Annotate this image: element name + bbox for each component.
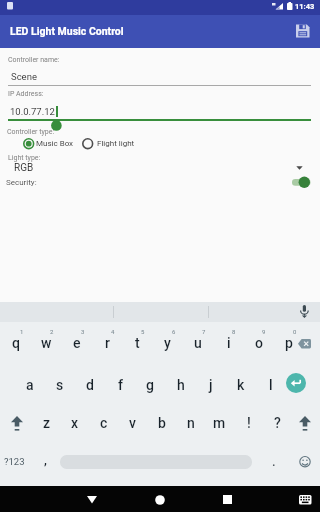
button[interactable]: [299, 456, 311, 468]
staticText: 8: [232, 328, 236, 335]
staticText: x: [71, 415, 79, 431]
button[interactable]: [90, 404, 119, 444]
button[interactable]: [263, 404, 292, 444]
staticText: k: [237, 377, 245, 393]
staticText: !: [247, 415, 251, 431]
staticText: ?: [274, 415, 281, 431]
staticText: 7: [202, 328, 206, 335]
button[interactable]: [92, 324, 122, 364]
staticText: w: [41, 335, 52, 351]
staticText: 2: [50, 328, 54, 335]
staticText: d: [86, 377, 94, 393]
staticText: z: [43, 415, 51, 431]
button[interactable]: [256, 364, 286, 404]
staticText: q: [12, 335, 20, 351]
staticText: e: [73, 335, 81, 351]
staticText: r: [105, 335, 110, 351]
button[interactable]: [146, 488, 174, 510]
staticText: .: [272, 454, 276, 469]
staticText: Controller type:: [7, 128, 55, 136]
staticText: g: [146, 377, 154, 393]
staticText: 4: [111, 328, 115, 335]
button[interactable]: [75, 364, 105, 404]
staticText: s: [56, 377, 64, 393]
staticText: Scene: [11, 71, 37, 82]
staticText: 11:43: [295, 2, 315, 11]
button[interactable]: [165, 364, 195, 404]
button[interactable]: [183, 324, 213, 364]
staticText: ?123: [4, 456, 25, 467]
button[interactable]: [21, 137, 78, 151]
button[interactable]: [61, 404, 90, 444]
button[interactable]: [290, 175, 312, 189]
staticText: t: [135, 335, 140, 351]
staticText: b: [158, 415, 166, 431]
button[interactable]: [15, 364, 45, 404]
staticText: m: [213, 415, 226, 431]
button[interactable]: [262, 444, 286, 486]
button[interactable]: [195, 364, 225, 404]
button[interactable]: [34, 444, 58, 486]
staticText: 0: [293, 328, 297, 335]
staticText: o: [255, 335, 263, 351]
button[interactable]: [5, 404, 29, 442]
staticText: a: [26, 377, 34, 393]
button[interactable]: [135, 364, 165, 404]
button[interactable]: RGB: [8, 160, 308, 176]
staticText: v: [129, 415, 136, 431]
button[interactable]: [119, 404, 148, 444]
staticText: 6: [172, 328, 176, 335]
button[interactable]: [78, 488, 106, 510]
button[interactable]: [32, 404, 61, 444]
staticText: i: [227, 335, 231, 351]
button[interactable]: [1, 324, 31, 364]
button[interactable]: [122, 324, 152, 364]
button[interactable]: [105, 364, 135, 404]
button[interactable]: [274, 324, 304, 364]
staticText: p: [285, 335, 293, 351]
staticText: Light type:: [8, 154, 41, 162]
staticText: u: [194, 335, 202, 351]
button[interactable]: [293, 404, 317, 442]
staticText: 5: [141, 328, 145, 335]
button[interactable]: [82, 137, 138, 151]
staticText: LED Light Music Control: [10, 25, 124, 37]
button[interactable]: [292, 21, 314, 43]
button[interactable]: 10.0.77.12: [8, 101, 312, 118]
staticText: 10.0.77.12: [10, 106, 55, 117]
button[interactable]: [286, 373, 306, 393]
button[interactable]: [244, 324, 274, 364]
staticText: 9: [262, 328, 266, 335]
staticText: n: [187, 415, 195, 431]
staticText: l: [269, 377, 273, 393]
button[interactable]: [45, 364, 75, 404]
staticText: 1: [20, 328, 24, 335]
button[interactable]: [294, 302, 316, 322]
staticText: j: [209, 377, 213, 393]
staticText: Security:: [6, 178, 37, 187]
button[interactable]: [226, 364, 256, 404]
staticText: y: [164, 335, 171, 351]
button[interactable]: [205, 404, 234, 444]
button[interactable]: [213, 488, 241, 510]
staticText: h: [177, 377, 185, 393]
staticText: IP Address:: [8, 90, 44, 98]
button[interactable]: [148, 404, 177, 444]
button[interactable]: Scene: [8, 66, 312, 84]
button[interactable]: [292, 324, 320, 364]
button[interactable]: [177, 404, 206, 444]
staticText: Controller name:: [8, 56, 60, 64]
button[interactable]: [153, 324, 183, 364]
button[interactable]: [31, 324, 61, 364]
button[interactable]: [0, 444, 34, 486]
button[interactable]: [296, 490, 316, 508]
staticText: Flight light: [97, 139, 135, 148]
staticText: 3: [81, 328, 85, 335]
button[interactable]: [62, 324, 92, 364]
staticText: Music Box: [36, 139, 74, 148]
staticText: ,: [44, 452, 47, 467]
button[interactable]: [234, 404, 263, 444]
button[interactable]: [213, 324, 243, 364]
staticText: c: [100, 415, 108, 431]
